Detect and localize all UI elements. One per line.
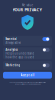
button[interactable]: Accept all: [3, 72, 52, 79]
button[interactable]: Analytics: [3, 47, 52, 59]
button[interactable]: Essential: [3, 36, 52, 46]
staticText: Always active: [5, 41, 21, 45]
staticText: YOUR PRIVACY: [12, 7, 42, 12]
staticText: Helps us understand how the app is used: [5, 52, 34, 59]
staticText: You can change these preferences at any …: [9, 82, 46, 85]
staticText: Marketing: [5, 63, 20, 67]
button[interactable]: Marketing: [3, 61, 52, 70]
staticText: Analytics: [5, 48, 17, 51]
staticText: Essential: [5, 37, 17, 41]
staticText: Accept all: [20, 73, 34, 77]
staticText: We value: [21, 3, 33, 7]
